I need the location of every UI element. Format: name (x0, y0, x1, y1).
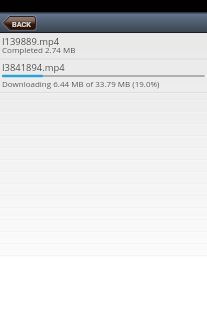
button[interactable]: Back (3, 16, 36, 30)
staticText: I3841894.mp4 (2, 61, 65, 74)
staticText: Completed 2.74 MB (2, 44, 76, 55)
staticText: I139889.mp4 (2, 35, 60, 48)
staticText: BACK (12, 20, 31, 29)
staticText: Downloading 6.44 MB of 33.79 MB (19.0%) (2, 78, 160, 89)
